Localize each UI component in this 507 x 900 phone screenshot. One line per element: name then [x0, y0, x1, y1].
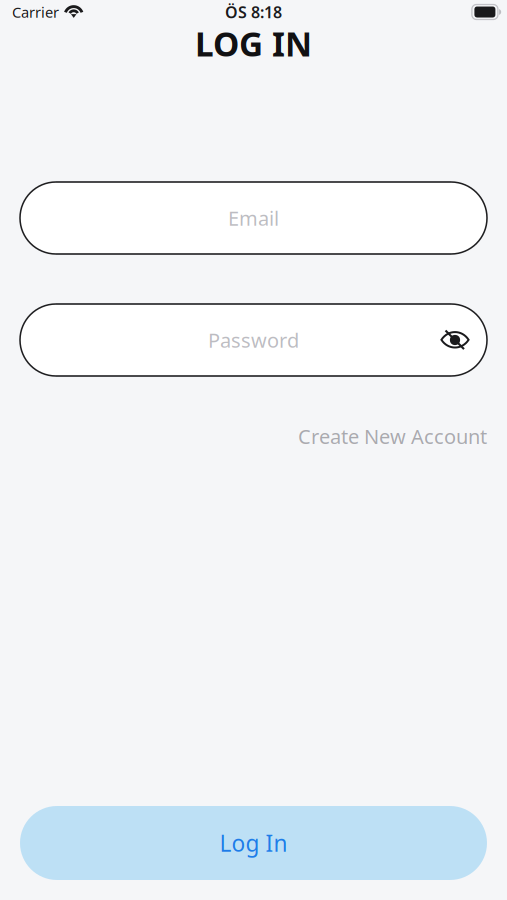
staticText: Carrier [12, 2, 59, 22]
button[interactable]: Show password [433, 318, 477, 362]
button[interactable]: Email [20, 182, 487, 254]
staticText: ÖS 8:18 [225, 1, 282, 23]
staticText: Email [228, 205, 279, 231]
button[interactable]: Create New Account [298, 423, 487, 450]
staticText: LOG IN [195, 21, 312, 66]
button[interactable]: Password [20, 304, 487, 376]
staticText: Password [208, 327, 299, 353]
button[interactable]: Log In [20, 806, 487, 880]
staticText: Create New Account [298, 423, 487, 450]
staticText: Log In [219, 828, 287, 858]
